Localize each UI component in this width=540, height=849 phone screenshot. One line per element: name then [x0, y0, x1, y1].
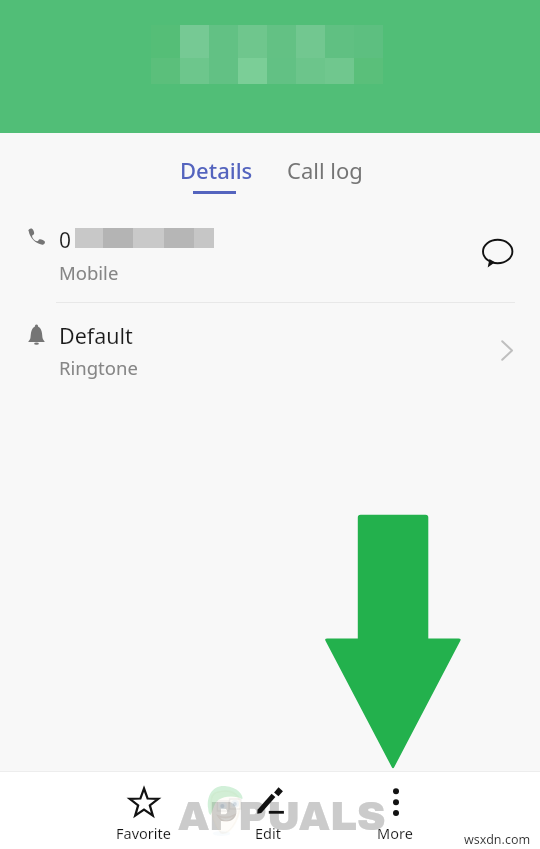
staticText: Default: [59, 321, 133, 350]
button[interactable]: Send message: [476, 230, 520, 274]
staticText: More: [377, 823, 413, 843]
staticText: 0: [59, 226, 72, 255]
staticText: Call log: [287, 155, 363, 185]
button[interactable]: 0: [0, 206, 540, 302]
button[interactable]: Edit: [224, 779, 314, 849]
staticText: Details: [180, 155, 253, 185]
staticText: Favorite: [116, 823, 171, 843]
staticText: Edit: [255, 823, 281, 843]
button[interactable]: Favorite: [99, 779, 189, 849]
staticText: Mobile: [59, 260, 119, 285]
staticText: wsxdn.com: [464, 831, 531, 848]
button[interactable]: More: [351, 779, 441, 849]
staticText: APPUALS: [178, 795, 386, 839]
staticText: Ringtone: [59, 355, 138, 380]
button[interactable]: Default: [0, 303, 540, 391]
button[interactable]: Call log: [281, 145, 366, 193]
button[interactable]: Details: [172, 145, 257, 197]
